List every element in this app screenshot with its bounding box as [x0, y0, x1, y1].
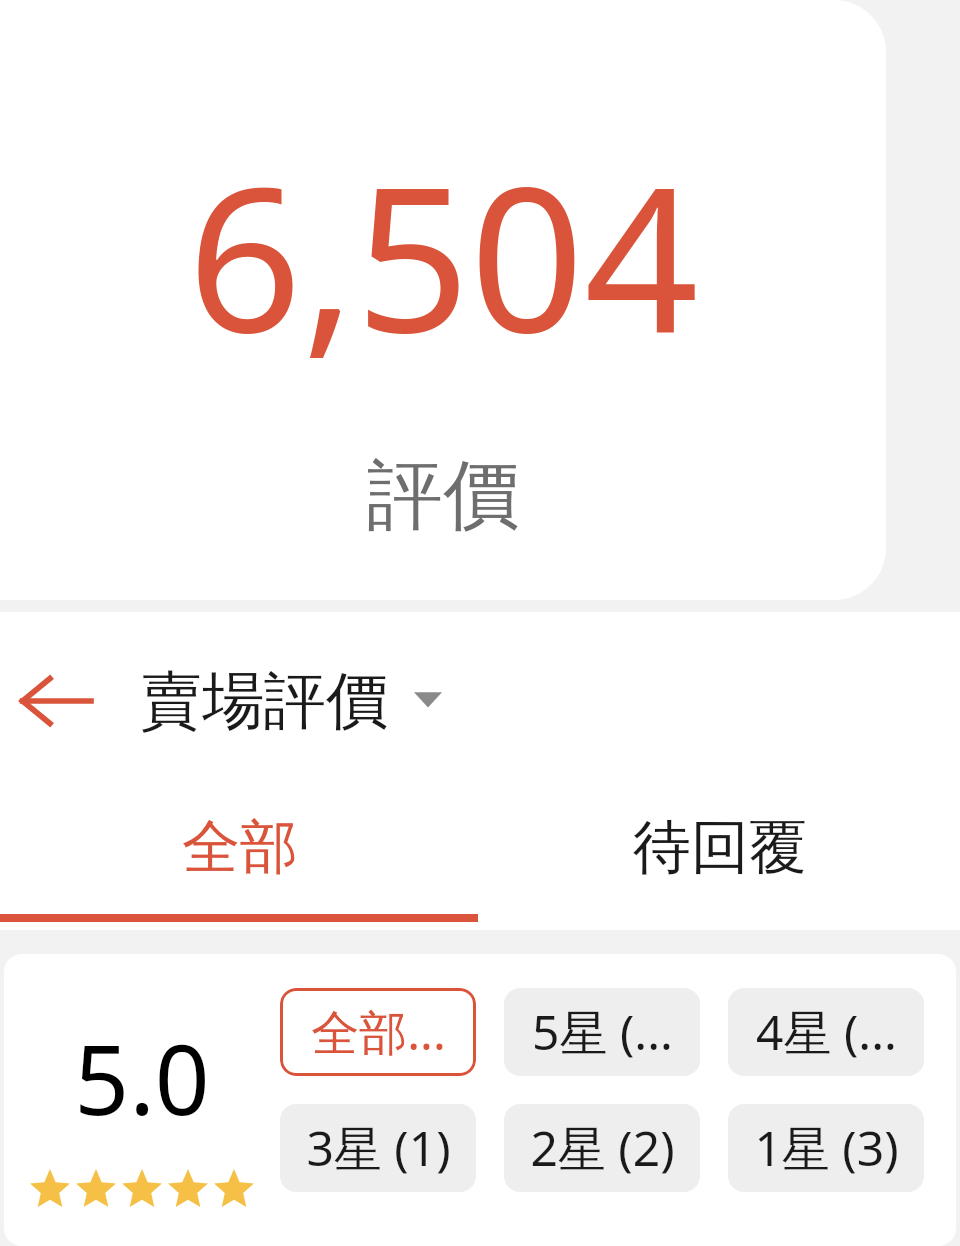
button[interactable]: 全部...	[280, 988, 476, 1076]
staticText: 4星 (...	[756, 999, 897, 1065]
button[interactable]: 待回覆	[480, 790, 960, 930]
button[interactable]: 5星 (...	[504, 988, 700, 1076]
button[interactable]: 全部	[0, 790, 480, 930]
staticText: 1星 (3)	[754, 1115, 899, 1181]
staticText: 2星 (2)	[530, 1115, 675, 1181]
button[interactable]: 賣場評價	[140, 662, 442, 740]
staticText: 5星 (...	[532, 999, 673, 1065]
button[interactable]: 3星 (1)	[280, 1104, 476, 1192]
button[interactable]: 2星 (2)	[504, 1104, 700, 1192]
staticText: 全部	[182, 811, 298, 884]
button[interactable]: 4星 (...	[728, 988, 924, 1076]
staticText: 全部...	[311, 999, 446, 1065]
staticText: 5.0	[74, 1012, 210, 1143]
staticText: 6,504	[187, 118, 699, 390]
staticText: 待回覆	[633, 811, 807, 884]
button[interactable]: Back	[0, 645, 112, 757]
staticText: 賣場評價	[140, 662, 388, 740]
button[interactable]: 6,504	[0, 0, 886, 600]
staticText: 3星 (1)	[306, 1115, 451, 1181]
button[interactable]: 1星 (3)	[728, 1104, 924, 1192]
staticText: 評價	[367, 448, 519, 544]
